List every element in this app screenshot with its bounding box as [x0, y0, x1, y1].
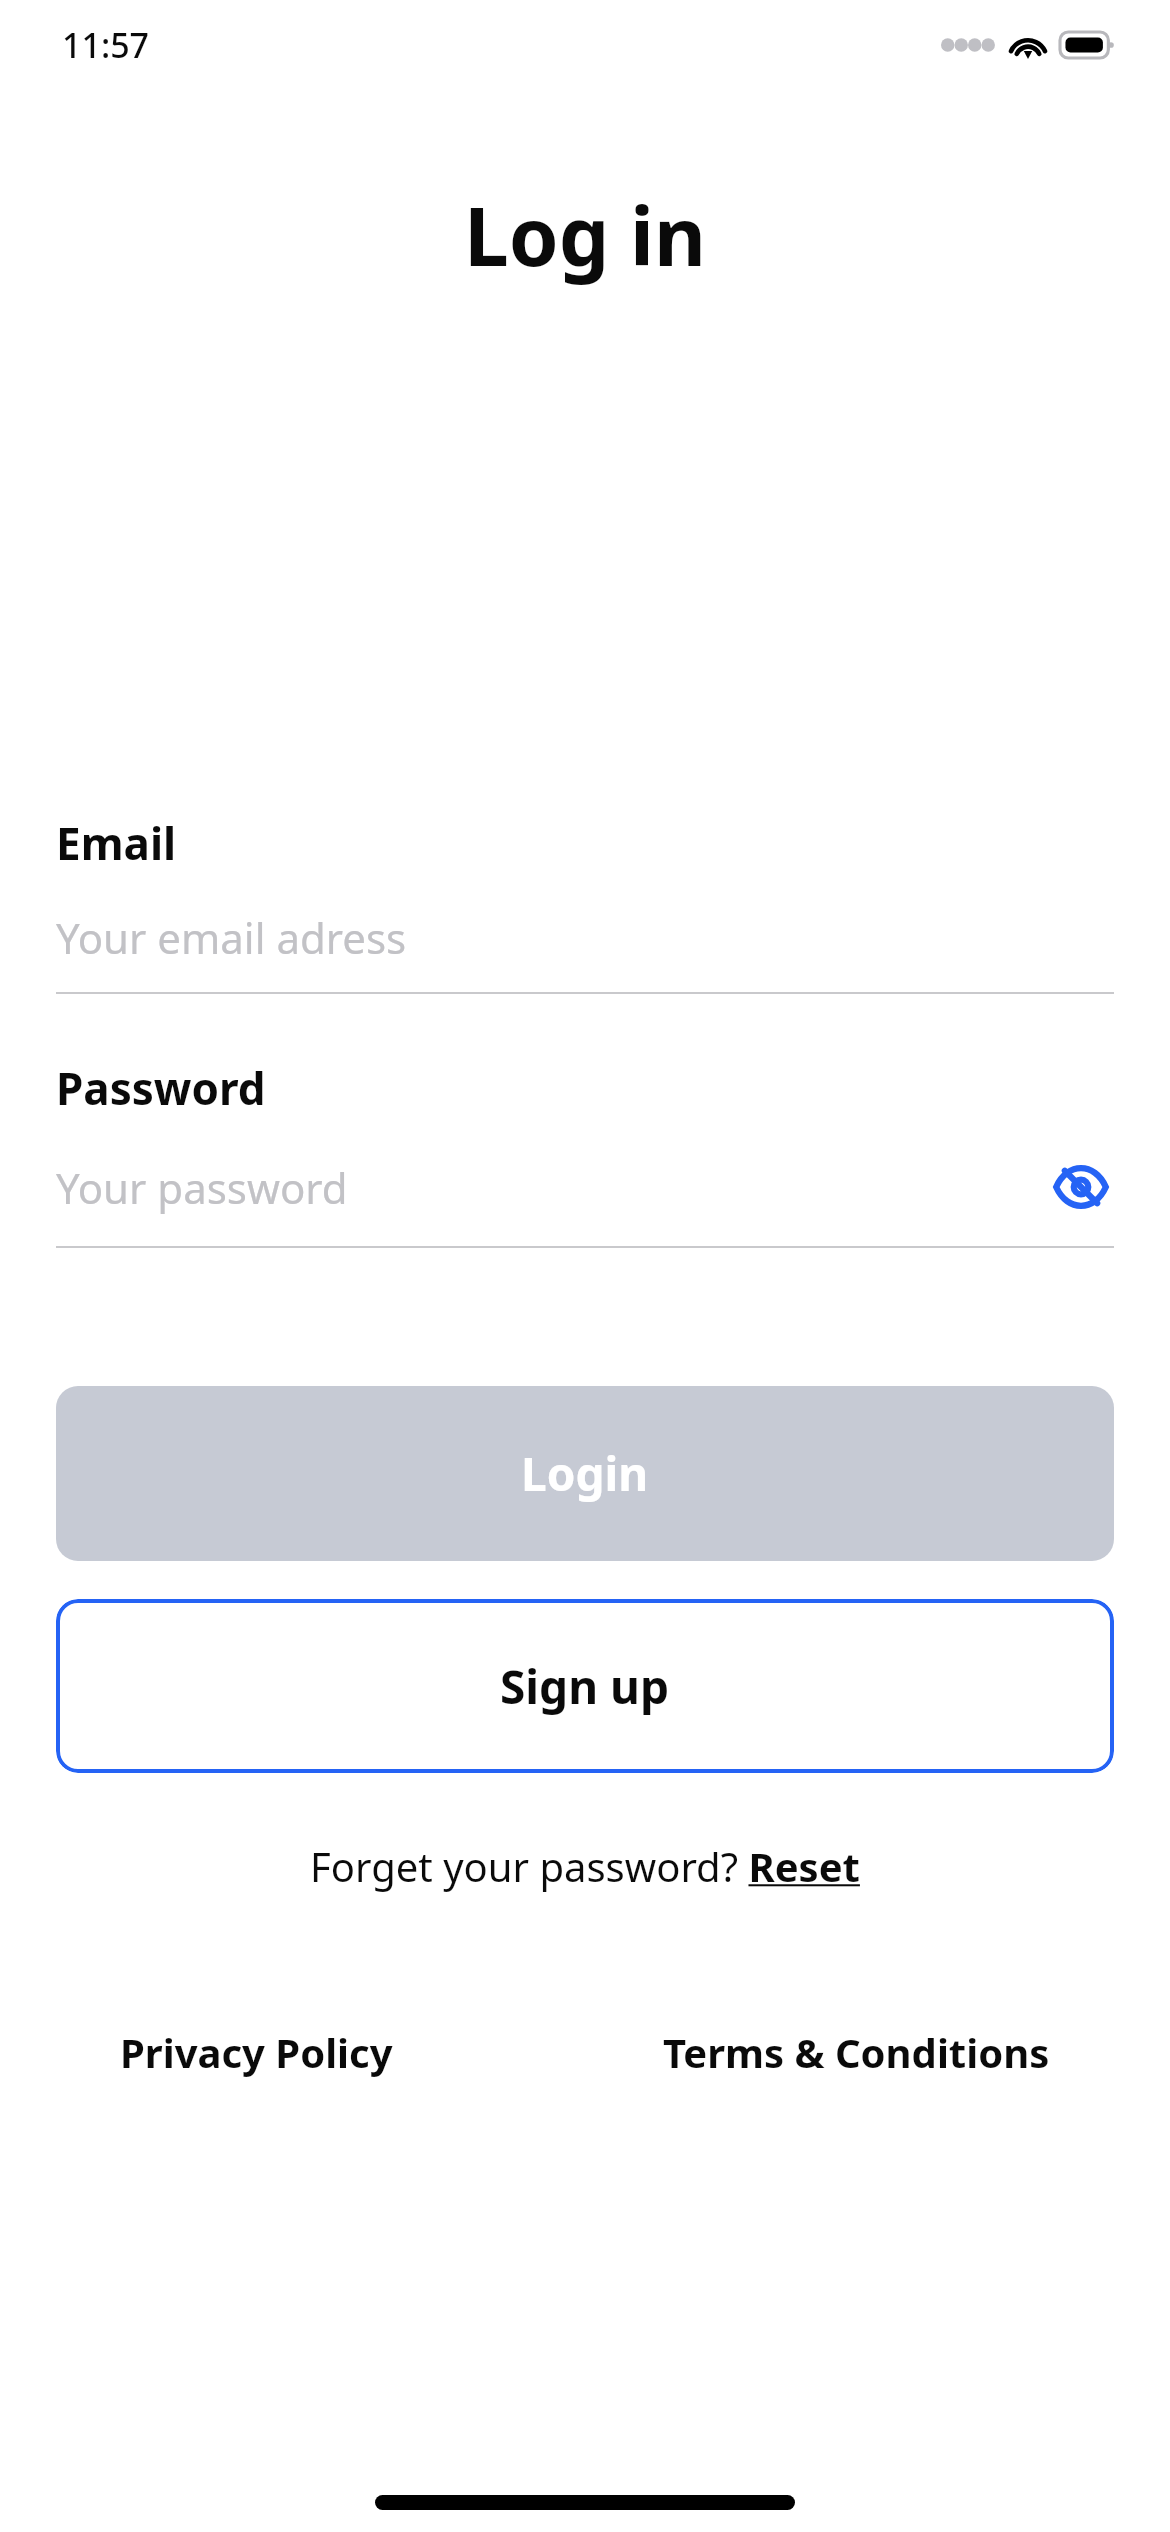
staticText: Privacy Policy [120, 2025, 393, 2079]
staticText: Password [56, 1058, 266, 1118]
staticText: Log in [464, 180, 706, 289]
staticText: Login [521, 1442, 649, 1505]
button[interactable]: Privacy Policy [120, 2025, 393, 2079]
staticText: Your password [56, 1159, 1048, 1216]
staticText: Terms & Conditions [663, 2025, 1050, 2079]
staticText: 11:57 [62, 22, 150, 68]
button[interactable]: Sign up [56, 1599, 1114, 1773]
button[interactable]: Login [56, 1386, 1114, 1561]
button[interactable]: Forget your password? Reset [56, 1839, 1114, 1893]
staticText: Sign up [500, 1655, 670, 1718]
staticText: Your email adress [56, 909, 1114, 966]
staticText: Email [56, 813, 177, 873]
button[interactable]: Terms & Conditions [663, 2025, 1050, 2079]
button[interactable]: Show password [1048, 1154, 1114, 1220]
staticText: Forget your password? Reset [310, 1839, 860, 1893]
